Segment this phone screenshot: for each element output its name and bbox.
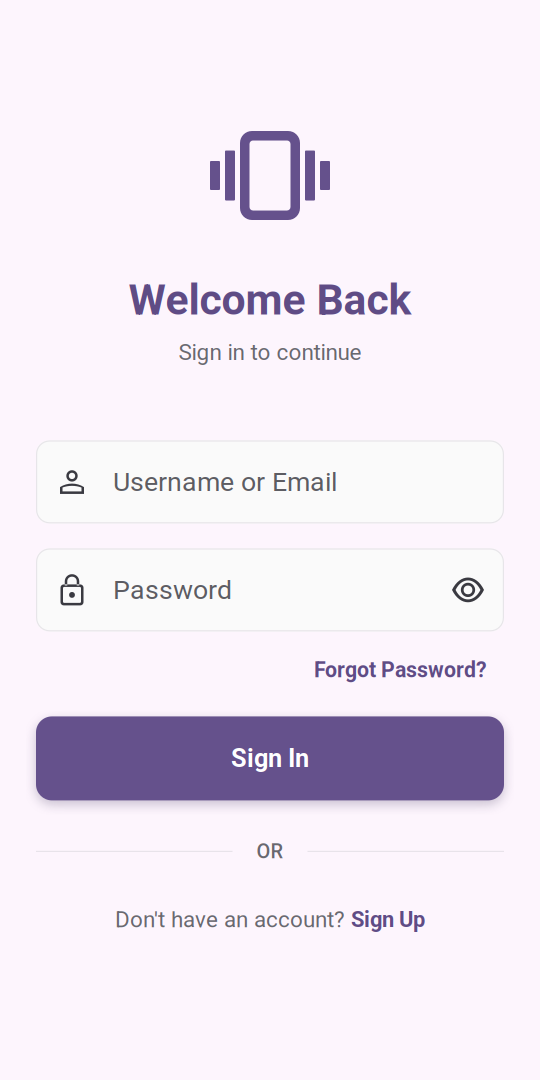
button[interactable]: Sign In (36, 716, 504, 800)
staticText: Password (113, 574, 232, 606)
staticText: Sign Up (351, 907, 425, 932)
staticText: Welcome Back (128, 275, 411, 325)
staticText: Don't have an account? (115, 906, 351, 933)
button[interactable]: Forgot Password? (310, 651, 491, 688)
staticText: Sign In (231, 744, 309, 773)
staticText: Forgot Password? (314, 657, 487, 682)
staticText: OR (256, 840, 283, 863)
button[interactable]: Show password (446, 573, 490, 607)
button[interactable]: Don't have an account? (105, 900, 435, 939)
staticText: Username or Email (113, 466, 337, 498)
staticText: Sign in to continue (178, 339, 361, 365)
button[interactable]: Username or Email (36, 440, 504, 523)
